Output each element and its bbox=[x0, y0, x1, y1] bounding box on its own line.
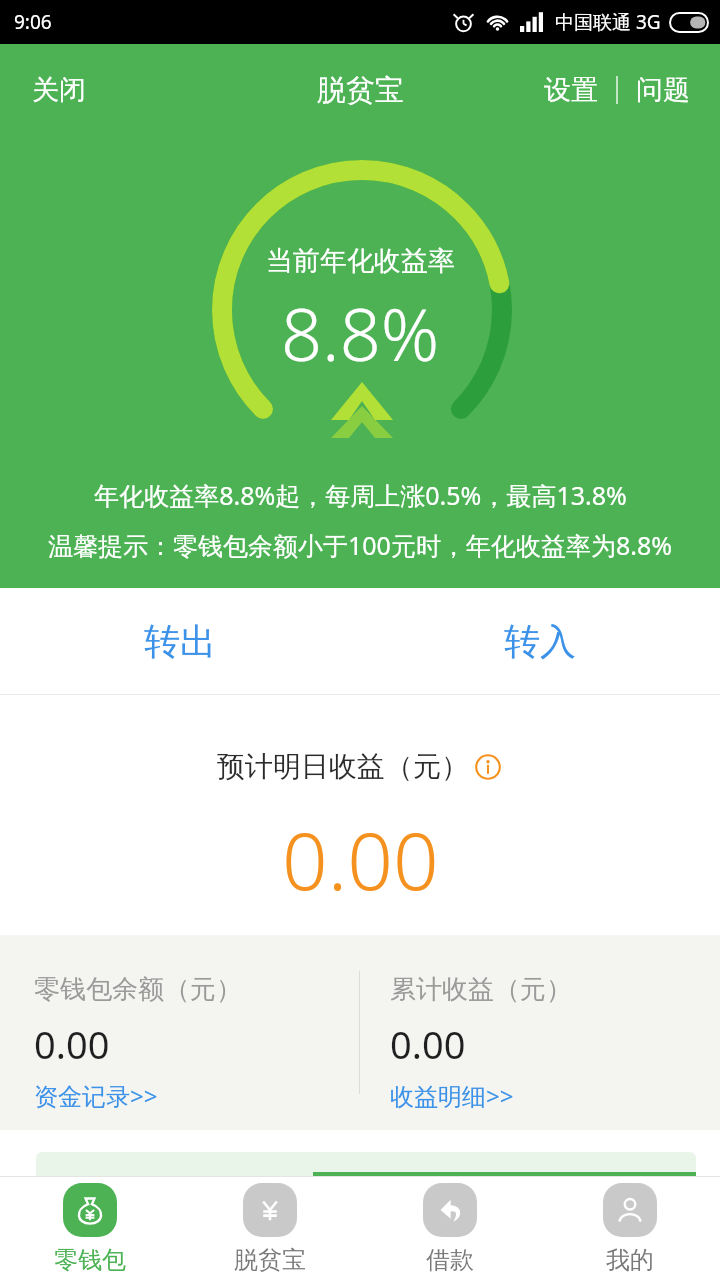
staticText: 0.00 bbox=[390, 1018, 466, 1070]
button[interactable]: 借款 bbox=[360, 1177, 540, 1280]
button[interactable]: 转出 bbox=[0, 588, 360, 694]
button[interactable]: 收益说明 bbox=[473, 752, 503, 782]
staticText: 转出 bbox=[144, 619, 216, 664]
staticText: 零钱包余额（元） bbox=[34, 973, 242, 1006]
button[interactable]: 我的 bbox=[540, 1177, 720, 1280]
staticText: 温馨提示：零钱包余额小于100元时，年化收益率为8.8% bbox=[48, 528, 672, 562]
staticText: 借款 bbox=[426, 1245, 474, 1275]
button[interactable]: 问题 bbox=[630, 61, 696, 119]
staticText: 年化收益率8.8%起，每周上涨0.5%，最高13.8% bbox=[94, 478, 627, 512]
staticText: 我的 bbox=[606, 1245, 654, 1275]
button[interactable]: 资金记录>> bbox=[34, 1076, 158, 1115]
staticText: 9:06 bbox=[14, 9, 52, 35]
staticText: 累计收益（元） bbox=[390, 973, 572, 1006]
button[interactable]: 转入 bbox=[360, 588, 720, 694]
button[interactable]: 设置 bbox=[538, 61, 604, 119]
button[interactable]: 关闭 bbox=[0, 59, 104, 121]
staticText: 脱贫宝 bbox=[234, 1245, 306, 1275]
staticText: 8.8% bbox=[281, 284, 440, 382]
staticText: 0.00 bbox=[34, 1018, 110, 1070]
button[interactable]: 脱贫宝 bbox=[180, 1177, 360, 1280]
staticText: 脱贫宝 bbox=[317, 72, 404, 109]
staticText: 中国联通 3G bbox=[555, 9, 661, 35]
button[interactable]: 零钱包 bbox=[0, 1177, 180, 1280]
staticText: 零钱包 bbox=[54, 1245, 126, 1275]
staticText: 0.00 bbox=[282, 804, 439, 913]
button[interactable] bbox=[36, 1152, 696, 1176]
staticText: 当前年化收益率 bbox=[266, 244, 455, 278]
staticText: 预计明日收益（元） bbox=[217, 749, 469, 784]
button[interactable]: 收益明细>> bbox=[390, 1076, 514, 1115]
staticText: 转入 bbox=[504, 619, 576, 664]
